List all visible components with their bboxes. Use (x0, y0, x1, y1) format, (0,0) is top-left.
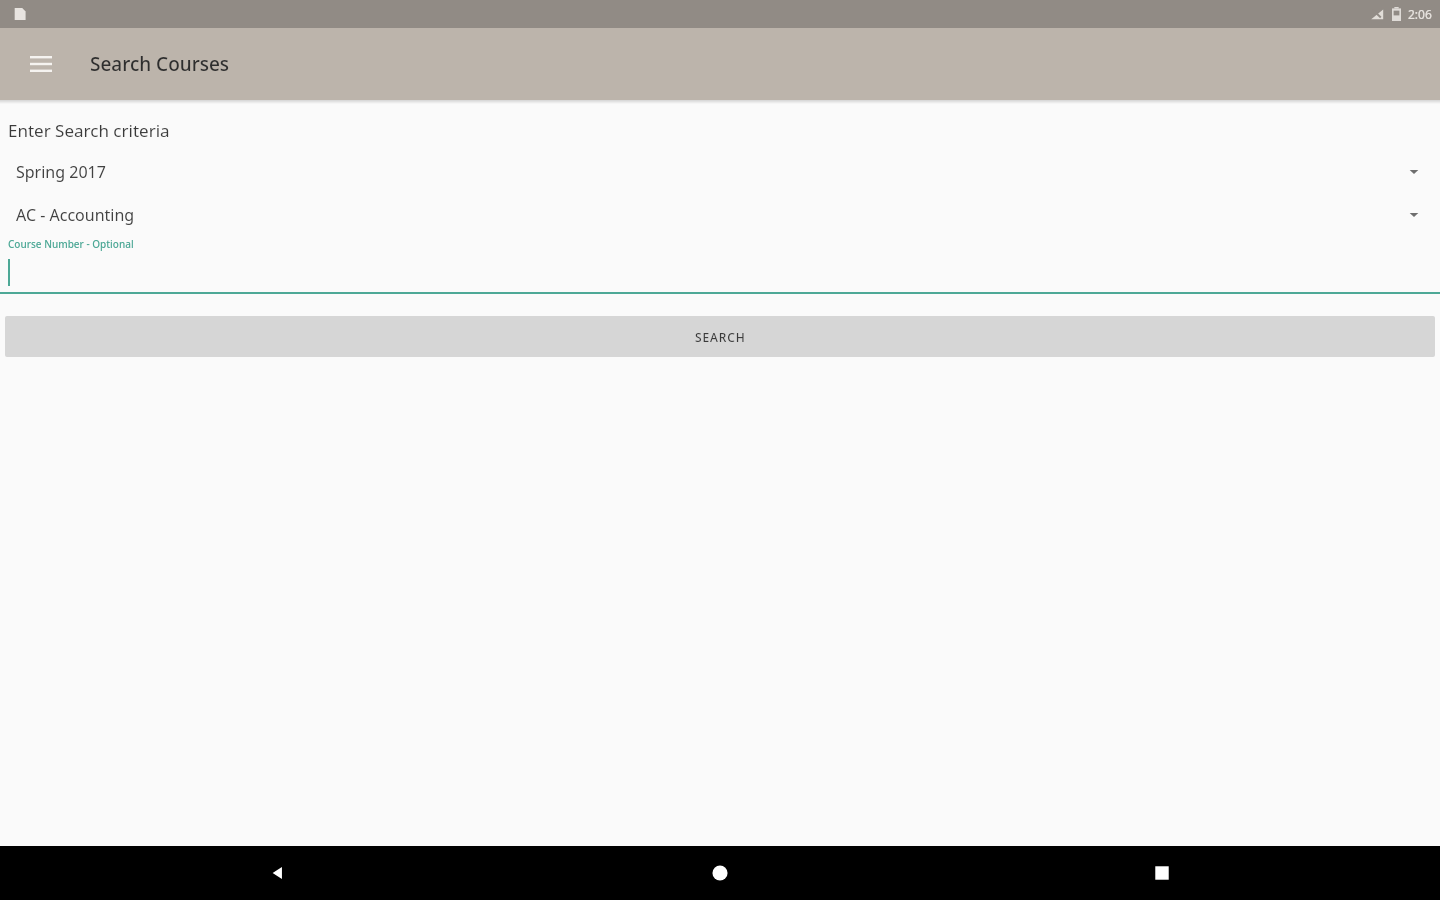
staticText: Enter Search criteria (8, 119, 170, 142)
button[interactable]: Back (251, 846, 305, 900)
button[interactable]: Home (693, 846, 747, 900)
staticText: Search Courses (90, 51, 230, 77)
staticText: AC - Accounting (16, 204, 135, 226)
staticText: 2:06 (1408, 6, 1432, 22)
button[interactable]: Course Number - Optional (0, 235, 1440, 294)
staticText: Course Number - Optional (8, 237, 134, 251)
staticText: SEARCH (695, 329, 746, 345)
button[interactable]: Spring 2017 (0, 153, 1440, 191)
button[interactable]: AC - Accounting (0, 196, 1440, 234)
button[interactable]: Recent apps (1135, 846, 1189, 900)
staticText: Spring 2017 (16, 161, 106, 183)
button[interactable]: Open navigation menu (17, 40, 65, 88)
button[interactable]: SEARCH (5, 316, 1435, 357)
